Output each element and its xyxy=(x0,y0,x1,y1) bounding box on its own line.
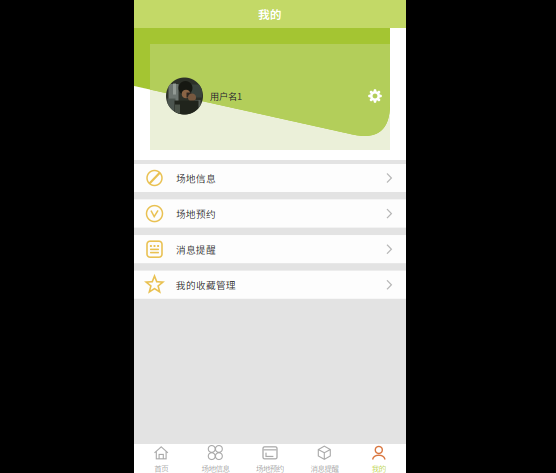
staticText: 场地预约 xyxy=(176,207,216,220)
staticText: 我的收藏管理 xyxy=(176,278,236,292)
button[interactable]: 消息提醒 xyxy=(297,444,352,473)
staticText: 用户名1 xyxy=(210,89,242,103)
button[interactable]: 场地预约 xyxy=(243,444,297,473)
button[interactable]: 我的 xyxy=(352,444,406,473)
button[interactable]: 设置 xyxy=(369,90,381,102)
staticText: 场地信息 xyxy=(176,171,216,185)
button[interactable]: 首页 xyxy=(134,444,188,473)
button[interactable]: 消息提醒 xyxy=(134,235,406,263)
staticText: 场地信息 xyxy=(202,463,230,473)
staticText: 场地预约 xyxy=(256,463,284,473)
button[interactable]: 场地信息 xyxy=(188,444,243,473)
staticText: 我的 xyxy=(258,5,282,22)
button[interactable]: 场地预约 xyxy=(134,200,406,228)
staticText: 消息提醒 xyxy=(310,463,338,473)
staticText: 首页 xyxy=(154,463,168,473)
staticText: 消息提醒 xyxy=(176,242,216,256)
button[interactable]: 我的收藏管理 xyxy=(134,271,406,299)
button[interactable]: 场地信息 xyxy=(134,164,406,192)
staticText: 我的 xyxy=(372,463,386,473)
